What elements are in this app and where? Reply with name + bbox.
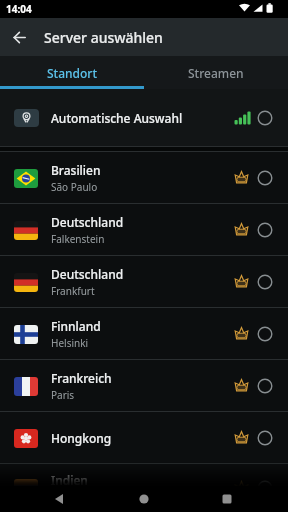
staticText: Standort [47,65,98,81]
button[interactable] [13,31,26,44]
staticText: 14:04 [6,2,32,16]
staticText: Indien [51,472,88,488]
staticText: São Paulo [51,180,98,194]
staticText: Deutschland [51,266,124,282]
staticText: Mumbai [51,490,90,504]
button[interactable]: Indien [0,464,288,512]
staticText: Server auswählen [44,28,163,47]
staticText: Paris [51,388,75,402]
button[interactable]: Deutschland [0,256,288,308]
staticText: Hongkong [51,430,112,446]
staticText: Streamen [188,65,244,81]
button[interactable] [42,486,78,512]
staticText: Automatische Auswahl [51,110,183,126]
staticText: Falkenstein [51,232,105,246]
button[interactable]: Brasilien [0,152,288,204]
button[interactable]: Frankreich [0,360,288,412]
button[interactable]: Streamen [144,56,288,89]
button[interactable]: Finnland [0,308,288,360]
button[interactable]: Standort [0,56,144,89]
staticText: Brasilien [51,162,101,178]
button[interactable]: Automatische Auswahl [0,89,288,146]
button[interactable] [209,486,245,512]
staticText: Frankreich [51,370,112,386]
button[interactable]: Deutschland [0,204,288,256]
staticText: Frankfurt [51,284,95,298]
staticText: Deutschland [51,214,124,230]
staticText: Helsinki [51,336,89,350]
button[interactable]: Hongkong [0,412,288,464]
button[interactable] [126,486,162,512]
staticText: Finnland [51,318,101,334]
